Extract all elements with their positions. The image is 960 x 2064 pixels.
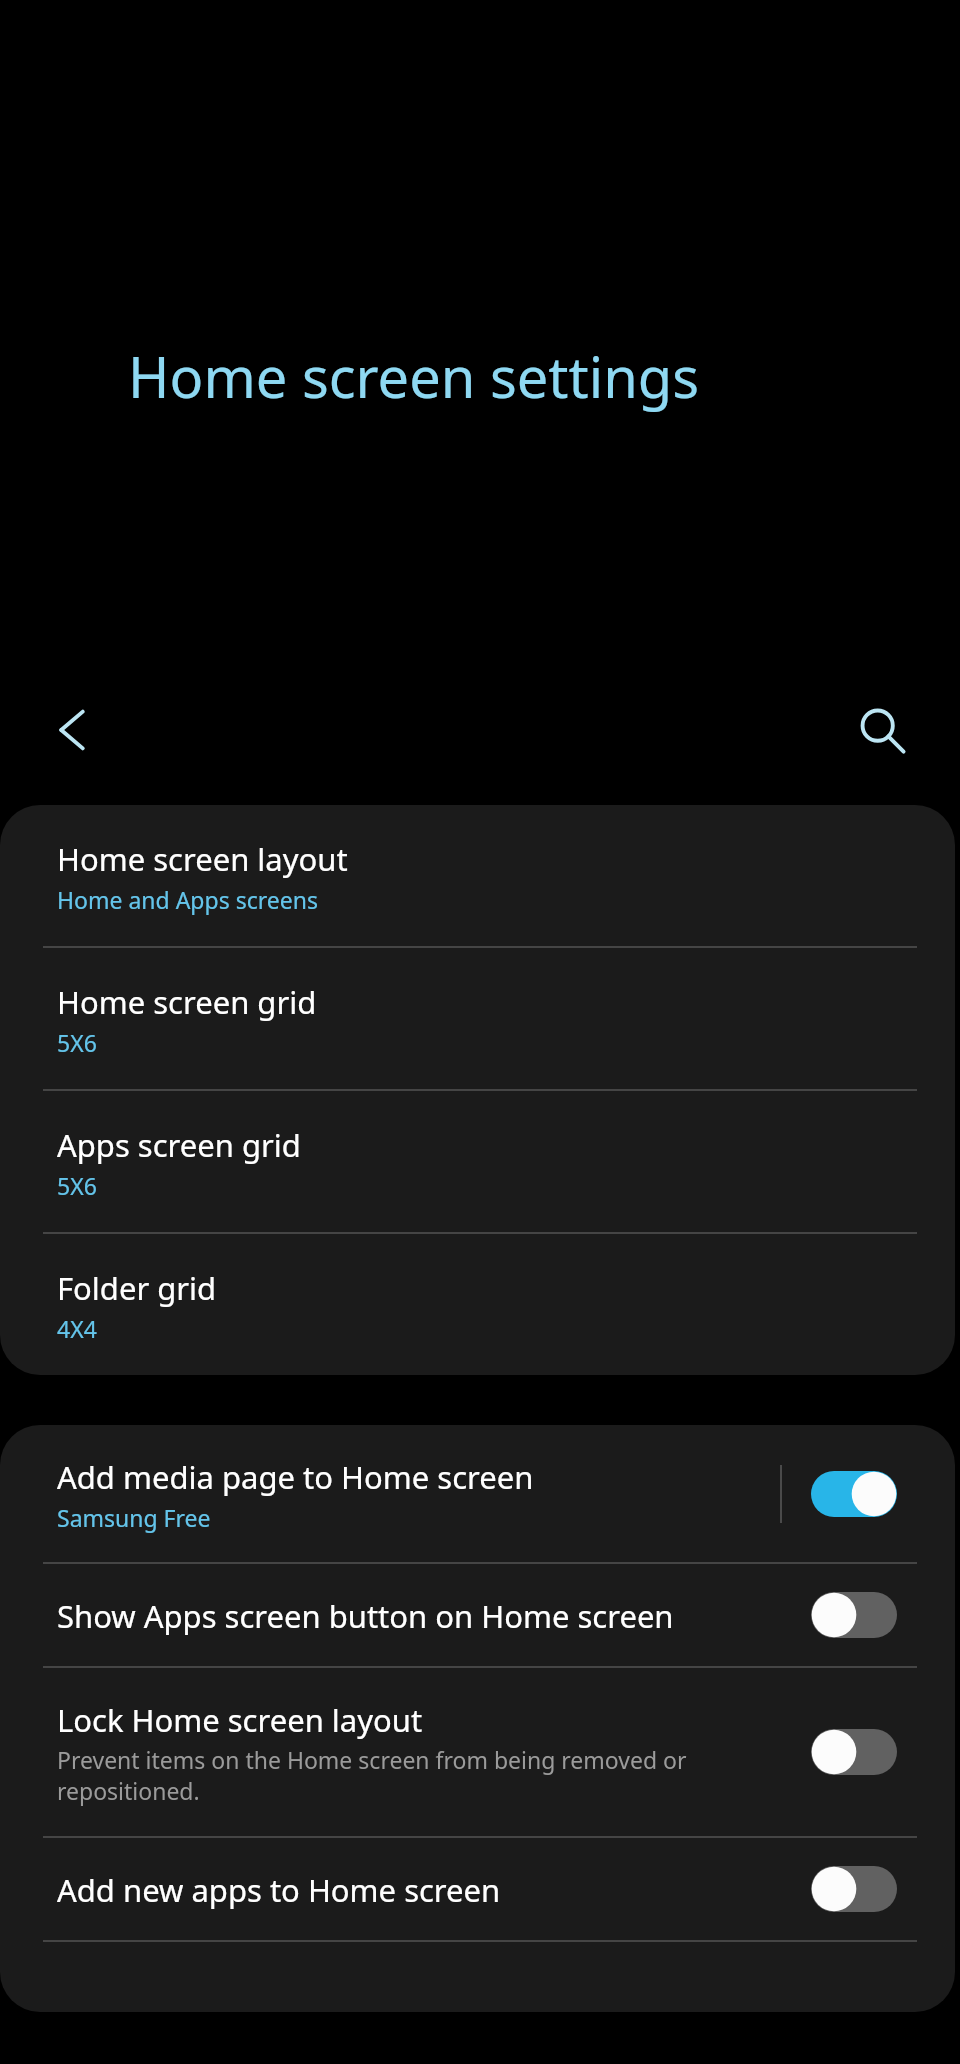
button[interactable]: Lock Home screen layout bbox=[0, 1668, 955, 1838]
button[interactable]: Off bbox=[810, 1716, 898, 1788]
staticText: Apps screen grid bbox=[57, 1124, 301, 1166]
button[interactable]: Show Apps screen button on Home screen bbox=[0, 1564, 955, 1668]
button[interactable]: Search bbox=[832, 680, 932, 780]
button[interactable]: Navigate up bbox=[22, 680, 122, 780]
button[interactable]: On bbox=[810, 1458, 898, 1530]
staticText: Lock Home screen layout bbox=[57, 1699, 423, 1741]
button[interactable]: Home screen grid bbox=[0, 948, 955, 1091]
staticText: Prevent items on the Home screen from be… bbox=[57, 1744, 687, 1807]
button[interactable]: Off bbox=[810, 1853, 898, 1925]
staticText: Add media page to Home screen bbox=[57, 1456, 534, 1498]
staticText: Home screen grid bbox=[57, 981, 317, 1023]
staticText: Home screen layout bbox=[57, 838, 348, 880]
button[interactable]: Home screen layout bbox=[0, 805, 955, 948]
staticText: 5X6 bbox=[57, 1027, 97, 1058]
staticText: Show Apps screen button on Home screen bbox=[57, 1595, 674, 1637]
button[interactable]: Off bbox=[810, 1579, 898, 1651]
staticText: Home screen settings bbox=[128, 338, 700, 414]
staticText: 4X4 bbox=[57, 1313, 97, 1344]
button[interactable]: Add media page to Home screen bbox=[0, 1425, 955, 1564]
staticText: Add new apps to Home screen bbox=[57, 1869, 501, 1911]
button[interactable]: Folder grid bbox=[0, 1234, 955, 1375]
staticText: Home and Apps screens bbox=[57, 884, 318, 915]
staticText: Folder grid bbox=[57, 1267, 217, 1309]
staticText: Samsung Free bbox=[57, 1502, 211, 1533]
staticText: 5X6 bbox=[57, 1170, 97, 1201]
button[interactable]: Apps screen grid bbox=[0, 1091, 955, 1234]
button[interactable]: Add new apps to Home screen bbox=[0, 1838, 955, 1942]
